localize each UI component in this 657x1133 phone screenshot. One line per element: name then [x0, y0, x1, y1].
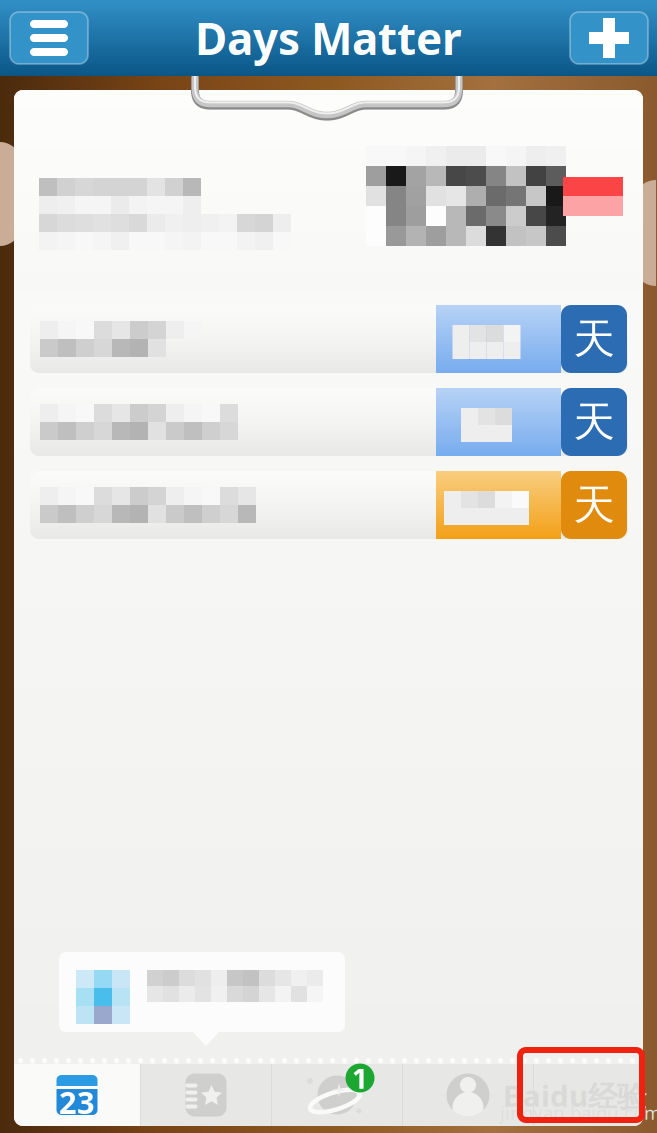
staticText: jingyan.baidu.com	[500, 1100, 657, 1125]
button[interactable]: More	[534, 1064, 643, 1126]
staticText: Days Matter	[195, 9, 462, 67]
staticText: 天	[573, 314, 614, 364]
button[interactable]: 天	[14, 471, 643, 539]
button[interactable]: Calendar	[14, 1064, 140, 1126]
button[interactable]: Add event	[570, 12, 648, 64]
button[interactable]: 天	[14, 388, 643, 456]
staticText: 23	[59, 1082, 95, 1122]
button[interactable]: Profile	[403, 1064, 533, 1126]
button[interactable]: Menu	[10, 12, 88, 64]
button[interactable]	[14, 90, 643, 291]
button[interactable]: 天	[14, 305, 643, 373]
staticText: Baidu经验	[503, 1076, 646, 1115]
button[interactable]: Discover, 1 new	[272, 1064, 402, 1126]
staticText: 天	[573, 480, 614, 530]
staticText: 1	[352, 1059, 368, 1097]
button[interactable]: Events	[141, 1064, 271, 1126]
staticText: 天	[573, 397, 614, 447]
